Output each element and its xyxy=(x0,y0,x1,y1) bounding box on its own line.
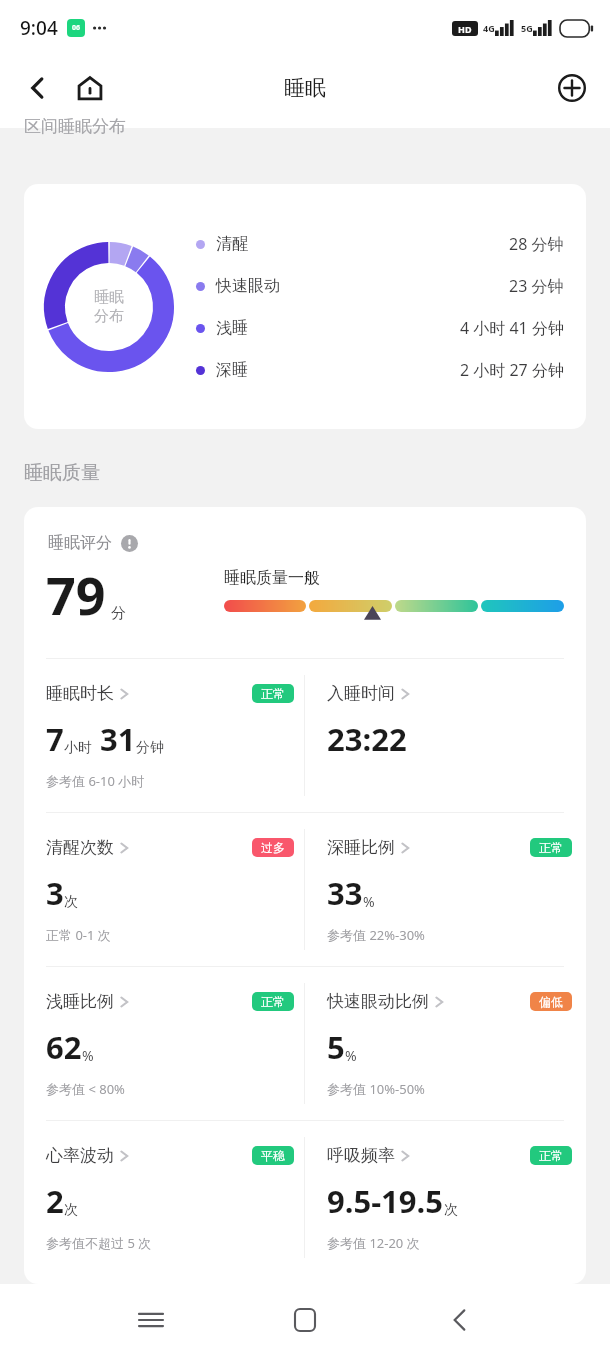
button[interactable]: 深睡比例 xyxy=(327,813,572,966)
staticText: 分钟 xyxy=(136,739,164,757)
staticText: 次 xyxy=(64,893,78,911)
staticText: 呼吸频率 xyxy=(327,1145,395,1166)
staticText: 快速眼动比例 xyxy=(327,991,429,1012)
button[interactable]: 浅睡 xyxy=(196,317,564,339)
staticText: 5G xyxy=(521,22,533,34)
staticText: 9.5-19.5 xyxy=(327,1180,444,1222)
staticText: 参考值不超过 5 次 xyxy=(46,1234,152,1252)
button[interactable]: 心率波动 xyxy=(46,1121,294,1274)
staticText: 分 xyxy=(111,604,126,623)
staticText: 7 xyxy=(46,718,64,760)
staticText: 参考值 12-20 次 xyxy=(327,1234,420,1252)
staticText: 3 xyxy=(46,872,64,914)
staticText: 过多 xyxy=(261,840,285,855)
staticText: 区间睡眠分布 xyxy=(24,116,126,137)
staticText: 睡眠时长 xyxy=(46,683,114,704)
button[interactable]: Home xyxy=(277,1292,333,1348)
staticText: 平稳 xyxy=(261,1148,285,1163)
staticText: 28 分钟 xyxy=(509,233,564,255)
staticText: 参考值 10%-50% xyxy=(327,1080,425,1098)
staticText: 23 分钟 xyxy=(509,275,564,297)
staticText: 5 xyxy=(327,1026,345,1068)
staticText: 睡眠质量一般 xyxy=(224,568,320,588)
button[interactable]: 入睡时间 xyxy=(327,659,572,812)
button[interactable]: 快速眼动比例 xyxy=(327,967,572,1120)
staticText: 正常 0-1 次 xyxy=(46,926,111,944)
staticText: % xyxy=(363,892,375,911)
staticText: 清醒 xyxy=(216,234,248,254)
staticText: 睡眠 xyxy=(284,75,326,101)
button[interactable]: 清醒次数 xyxy=(46,813,294,966)
staticText: 9:04 xyxy=(20,15,58,41)
staticText: % xyxy=(82,1046,94,1065)
staticText: 清醒次数 xyxy=(46,837,114,858)
button[interactable]: 深睡 xyxy=(196,359,564,381)
staticText: 正常 xyxy=(539,1148,563,1163)
button[interactable]: Home xyxy=(66,64,114,112)
staticText: 正常 xyxy=(261,994,285,1009)
staticText: 浅睡 xyxy=(216,318,248,338)
staticText: 参考值 6-10 小时 xyxy=(46,772,145,790)
staticText: 4 小时 41 分钟 xyxy=(460,317,564,339)
staticText: 2 xyxy=(46,1180,64,1222)
staticText: 参考值 < 80% xyxy=(46,1080,125,1098)
staticText: 分布 xyxy=(94,307,124,326)
staticText: 参考值 22%-30% xyxy=(327,926,425,944)
staticText: 睡眠质量 xyxy=(24,461,100,485)
staticText: 浅睡比例 xyxy=(46,991,114,1012)
button[interactable]: Back xyxy=(431,1292,487,1348)
staticText: HD xyxy=(458,23,472,35)
button[interactable]: 睡眠时长 xyxy=(46,659,294,812)
button[interactable]: 呼吸频率 xyxy=(327,1121,572,1274)
staticText: 小时 xyxy=(64,739,92,757)
staticText: 79 xyxy=(46,559,106,630)
button[interactable]: 快速眼动 xyxy=(196,275,564,297)
button[interactable]: Back xyxy=(14,64,62,112)
staticText: 心率波动 xyxy=(46,1145,114,1166)
staticText: 33 xyxy=(327,872,363,914)
staticText: 深睡比例 xyxy=(327,837,395,858)
staticText: % xyxy=(345,1046,357,1065)
button[interactable]: Recents xyxy=(123,1292,179,1348)
staticText: 23:22 xyxy=(327,718,407,760)
staticText: 睡眠评分 xyxy=(48,533,112,553)
staticText: 次 xyxy=(444,1201,458,1219)
button[interactable]: 睡眠评分 xyxy=(48,533,138,553)
button[interactable]: Add xyxy=(548,64,596,112)
other: Info xyxy=(121,535,138,552)
staticText: 正常 xyxy=(539,840,563,855)
staticText: 次 xyxy=(64,1201,78,1219)
staticText: 快速眼动 xyxy=(216,276,280,296)
staticText: 31 xyxy=(100,718,136,760)
staticText: 06 xyxy=(72,23,81,33)
staticText: 偏低 xyxy=(539,994,563,1009)
staticText: 睡眠 xyxy=(94,288,124,307)
staticText: 62 xyxy=(46,1026,82,1068)
button[interactable]: 睡眠 xyxy=(24,184,586,429)
staticText: 深睡 xyxy=(216,360,248,380)
staticText: 正常 xyxy=(261,686,285,701)
staticText: 4G xyxy=(483,22,495,34)
staticText: 2 小时 27 分钟 xyxy=(460,359,564,381)
button[interactable]: 清醒 xyxy=(196,233,564,255)
button[interactable]: 浅睡比例 xyxy=(46,967,294,1120)
staticText: 入睡时间 xyxy=(327,683,395,704)
